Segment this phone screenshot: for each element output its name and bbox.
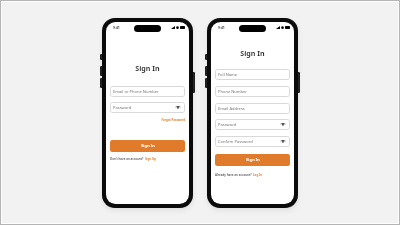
staticText: Sign In <box>141 143 155 149</box>
other: Show password <box>175 105 181 109</box>
staticText: Sign In <box>106 63 189 73</box>
staticText: Email or Phone Number <box>113 89 159 95</box>
button[interactable]: Already have an account? <box>215 173 262 177</box>
staticText: Sign Up <box>145 157 156 161</box>
staticText: Log In <box>253 173 262 177</box>
button[interactable]: Don't have an account? <box>110 157 156 161</box>
staticText: Sign In <box>246 157 260 163</box>
button[interactable]: Sign In <box>215 154 290 166</box>
staticText: Confirm Password <box>218 139 253 145</box>
button[interactable]: Full Name <box>215 69 290 80</box>
staticText: Don't have an account? <box>110 157 145 161</box>
staticText: Email Address <box>218 106 245 112</box>
button[interactable]: Sign In <box>110 140 185 152</box>
button[interactable]: Email or Phone Number <box>110 86 185 97</box>
staticText: Full Name <box>218 72 238 78</box>
button[interactable]: Forgot Password <box>110 118 185 122</box>
staticText: Password <box>113 105 132 111</box>
staticText: 9:41 <box>113 25 120 30</box>
staticText: Phone Number <box>218 89 248 95</box>
staticText: Already have an account? <box>215 173 253 177</box>
button[interactable]: Email Address <box>215 103 290 114</box>
button[interactable]: Phone Number <box>215 86 290 97</box>
staticText: Sign In <box>211 48 294 58</box>
button[interactable]: Password <box>110 102 185 113</box>
button[interactable]: Confirm Password <box>215 136 290 147</box>
staticText: 9:41 <box>218 25 225 30</box>
other: Show password <box>280 139 286 143</box>
button[interactable]: Password <box>215 119 290 130</box>
staticText: Password <box>218 122 237 128</box>
other: Show password <box>280 122 286 126</box>
